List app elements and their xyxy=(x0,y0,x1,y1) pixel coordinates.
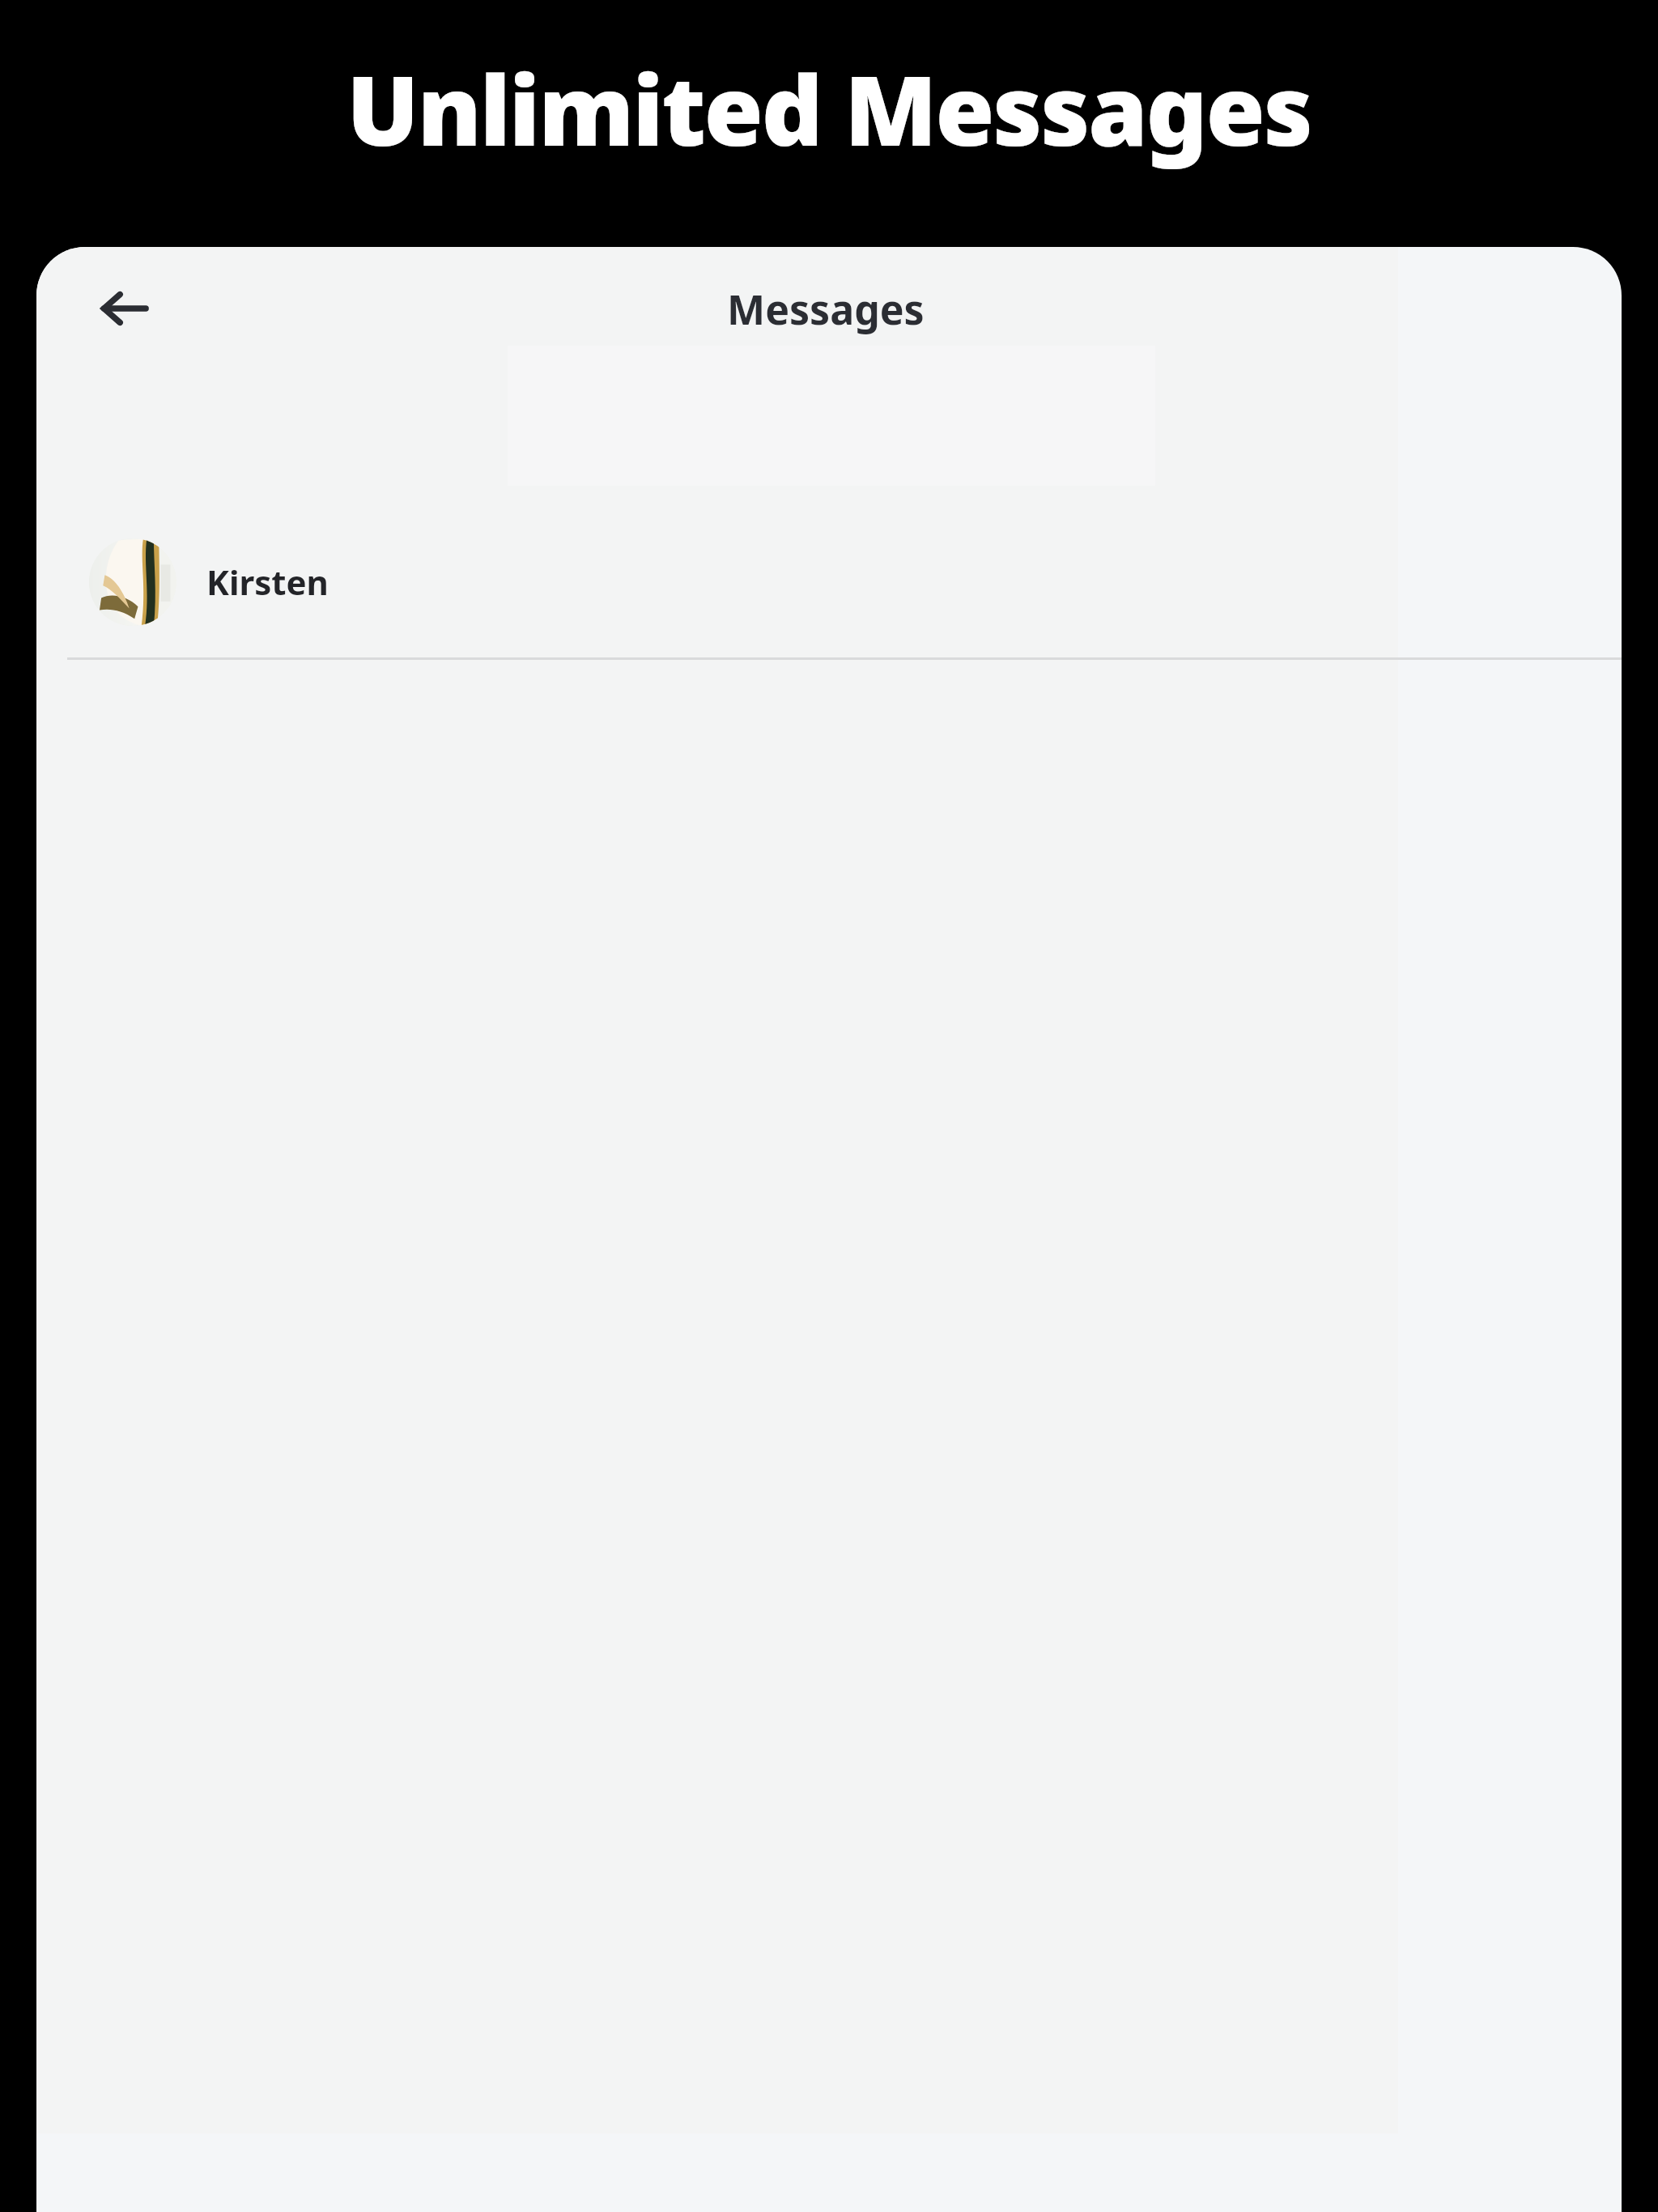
staticText: Messages xyxy=(727,282,925,337)
button[interactable]: Kirsten xyxy=(36,506,1622,657)
button[interactable]: Back xyxy=(81,265,168,352)
staticText: Unlimited Messages xyxy=(0,44,1658,174)
staticText: Kirsten xyxy=(206,559,329,605)
